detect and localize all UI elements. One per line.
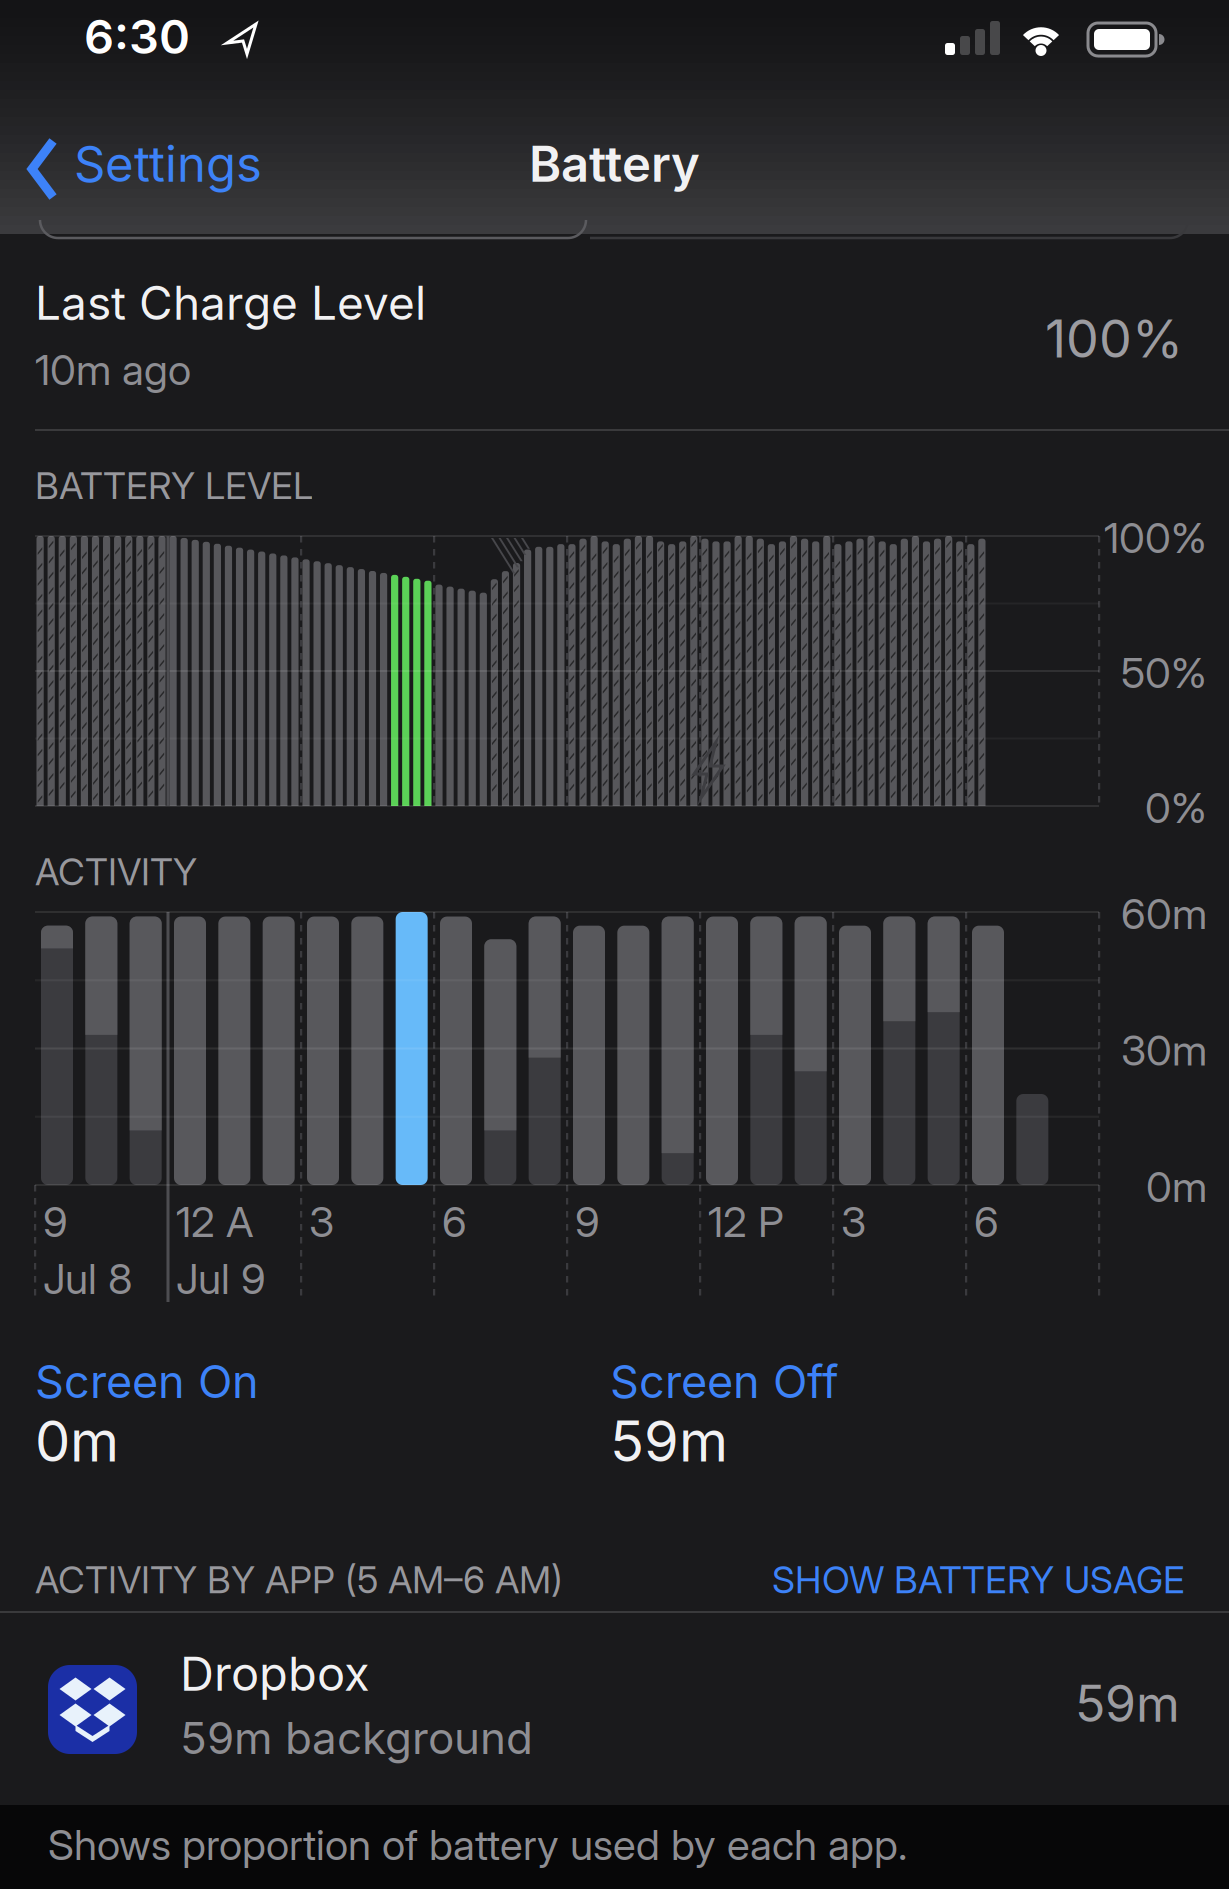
staticText: Settings [74, 135, 262, 193]
staticText: 6 [442, 1197, 467, 1246]
staticText: 3 [841, 1197, 866, 1246]
staticText: BATTERY LEVEL [35, 464, 313, 508]
staticText: ACTIVITY BY APP (5 AM–6 AM) [35, 1558, 563, 1602]
button[interactable]: Back to Settings [28, 134, 278, 206]
staticText: 0m [1146, 1162, 1207, 1211]
staticText: ACTIVITY [35, 850, 197, 894]
staticText: Jul 8 [43, 1254, 132, 1303]
staticText: 9 [43, 1197, 68, 1246]
staticText: 100% [1104, 513, 1207, 562]
staticText: 0% [1145, 783, 1207, 832]
staticText: 6 [974, 1197, 999, 1246]
staticText: 0m [35, 1408, 119, 1474]
staticText: 60m [1121, 889, 1207, 938]
button[interactable]: SHOW BATTERY USAGE [772, 1558, 1185, 1602]
staticText: 59m background [180, 1712, 533, 1764]
staticText: 30m [1121, 1025, 1207, 1075]
staticText: Last Charge Level [35, 276, 426, 330]
staticText: 10m ago [35, 345, 191, 394]
staticText: Dropbox [180, 1646, 370, 1701]
staticText: 12 P [708, 1197, 784, 1246]
staticText: 50% [1121, 648, 1207, 697]
staticText: Shows proportion of battery used by each… [48, 1820, 907, 1869]
button[interactable]: Screen On [35, 1355, 259, 1408]
staticText: 12 A [176, 1197, 253, 1246]
staticText: Screen On [35, 1355, 259, 1408]
staticText: 9 [575, 1197, 600, 1246]
staticText: Jul 9 [176, 1254, 266, 1303]
staticText: Battery [529, 135, 700, 193]
staticText: 3 [309, 1197, 334, 1246]
staticText: SHOW BATTERY USAGE [772, 1558, 1185, 1602]
staticText: 100% [1045, 308, 1183, 369]
button[interactable]: Screen Off [610, 1355, 839, 1408]
staticText: Screen Off [610, 1355, 839, 1408]
staticText: 6:30 [84, 9, 190, 64]
staticText: 59m [610, 1408, 728, 1474]
button[interactable]: Dropbox [0, 1613, 1229, 1805]
staticText: 59m [1075, 1674, 1180, 1733]
